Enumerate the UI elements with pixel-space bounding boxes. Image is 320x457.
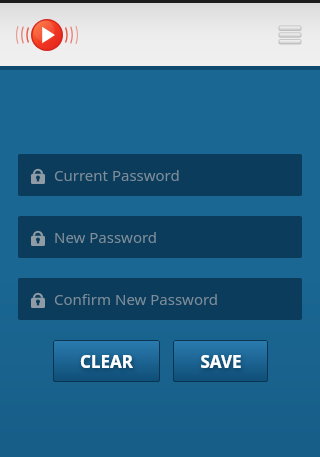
button[interactable]: CLEAR: [53, 340, 160, 382]
staticText: New Password: [54, 227, 158, 247]
button[interactable]: Menu: [272, 17, 308, 53]
button[interactable]: App logo: [6, 8, 88, 62]
staticText: SAVE: [200, 350, 242, 373]
button[interactable]: Confirm New Password: [18, 278, 302, 320]
button[interactable]: New Password: [18, 216, 302, 258]
button[interactable]: Current Password: [18, 154, 302, 196]
button[interactable]: SAVE: [173, 340, 268, 382]
staticText: CLEAR: [80, 350, 133, 373]
staticText: Current Password: [54, 165, 180, 185]
staticText: Confirm New Password: [54, 289, 219, 309]
